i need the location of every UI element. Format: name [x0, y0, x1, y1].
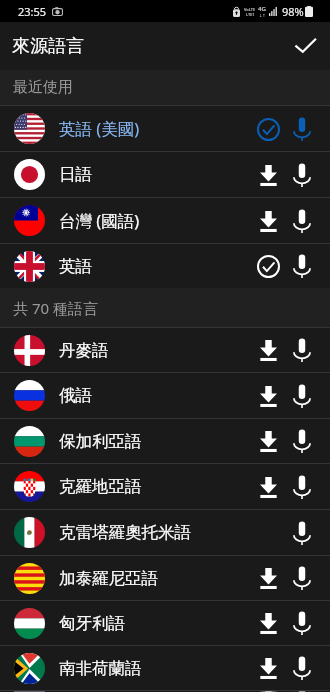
button[interactable]: Download language — [251, 601, 285, 645]
button[interactable]: Selected — [251, 107, 285, 151]
button[interactable]: 丹麥語 — [0, 328, 330, 372]
staticText: 最近使用 — [13, 78, 73, 97]
button[interactable]: 保加利亞語 — [0, 419, 330, 463]
staticText: 南非荷蘭語 — [59, 658, 142, 679]
button[interactable]: 荷蘭語 — [0, 691, 330, 692]
button[interactable]: Download language — [251, 465, 285, 509]
staticText: 保加利亞語 — [59, 431, 142, 452]
button[interactable]: 匈牙利語 — [0, 601, 330, 645]
button[interactable]: 南非荷蘭語 — [0, 646, 330, 690]
button[interactable]: Download language — [251, 153, 285, 197]
button[interactable]: 英語 (美國) — [0, 106, 330, 151]
staticText: 23:55 — [18, 4, 47, 19]
button[interactable]: Download language — [251, 419, 285, 463]
staticText: 台灣 (國語) — [59, 209, 140, 232]
button[interactable]: 加泰羅尼亞語 — [0, 556, 330, 600]
button[interactable]: Voice input — [285, 511, 319, 555]
button[interactable]: 英語 — [0, 244, 330, 288]
button[interactable]: Voice input — [285, 601, 319, 645]
button[interactable]: Voice input — [285, 199, 319, 243]
button[interactable]: Voice input — [285, 107, 319, 151]
button[interactable]: Voice input — [285, 328, 319, 372]
button[interactable]: Download language — [251, 328, 285, 372]
staticText: 克羅地亞語 — [59, 476, 142, 497]
button[interactable]: Voice input — [285, 465, 319, 509]
button[interactable]: Confirm — [283, 24, 327, 68]
staticText: 日語 — [59, 164, 92, 185]
staticText: 英語 (美國) — [59, 117, 140, 140]
button[interactable]: Download language — [251, 199, 285, 243]
button[interactable]: Voice input — [285, 244, 319, 288]
staticText: 丹麥語 — [59, 340, 109, 361]
staticText: 英語 — [59, 256, 92, 277]
button[interactable]: 克羅地亞語 — [0, 464, 330, 509]
staticText: 共 70 種語言 — [13, 298, 98, 318]
button[interactable]: 俄語 — [0, 373, 330, 418]
button[interactable]: Voice input — [285, 556, 319, 600]
button[interactable]: Voice input — [285, 419, 319, 463]
button[interactable]: 日語 — [0, 152, 330, 197]
button[interactable]: Download language — [251, 691, 285, 692]
button[interactable]: Voice input — [285, 374, 319, 418]
staticText: 來源語言 — [12, 35, 84, 58]
staticText: LTE1 — [246, 12, 255, 17]
staticText: 4G — [258, 5, 266, 13]
button[interactable]: Voice input — [285, 153, 319, 197]
staticText: ↓↑ — [259, 13, 266, 18]
button[interactable]: 克雷塔羅奧托米語 — [0, 510, 330, 555]
staticText: VoLTE — [244, 7, 256, 12]
staticText: 98% — [282, 4, 304, 19]
button[interactable]: Selected — [251, 244, 285, 288]
button[interactable]: 台灣 (國語) — [0, 198, 330, 243]
button[interactable]: Download language — [251, 374, 285, 418]
staticText: 匈牙利語 — [59, 613, 125, 634]
button[interactable]: Voice input — [285, 646, 319, 690]
staticText: 加泰羅尼亞語 — [59, 568, 158, 589]
button[interactable]: Voice input — [285, 691, 319, 692]
button[interactable]: Download language — [251, 646, 285, 690]
staticText: 俄語 — [59, 385, 92, 406]
staticText: 克雷塔羅奧托米語 — [59, 522, 191, 543]
button[interactable]: Download language — [251, 556, 285, 600]
